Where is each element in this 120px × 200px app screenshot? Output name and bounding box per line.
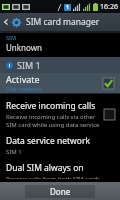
staticText: Receive incoming calls via other SIM car… [6,113,100,129]
button[interactable]: Unchecked [104,109,115,120]
staticText: SIM 1 [6,148,22,156]
staticText: Activate [6,73,40,85]
staticText: SIM 1 [17,59,41,71]
staticText: Done [50,186,71,197]
button[interactable]: Receive incoming calls [0,97,120,132]
button[interactable]: Done [25,185,95,198]
staticText: Dual SIM always on [6,162,84,174]
button[interactable]: Dual SIM always on [0,159,120,182]
staticText: 1 [66,4,69,11]
staticText: Data service network [6,135,90,147]
staticText: Use network [6,85,42,93]
button[interactable]: Back [0,13,11,31]
button[interactable]: Activate [0,73,120,93]
staticText: Receive calls from both SIM cards even d… [6,175,115,179]
staticText: SIM [6,34,16,41]
button[interactable]: Checked [103,78,114,89]
button[interactable]: Data service network [0,132,120,159]
staticText: Unknown [6,42,42,53]
staticText: Receive incoming calls [6,100,96,112]
staticText: SIM card manager [26,16,100,28]
staticText: 16:26 [100,2,118,12]
